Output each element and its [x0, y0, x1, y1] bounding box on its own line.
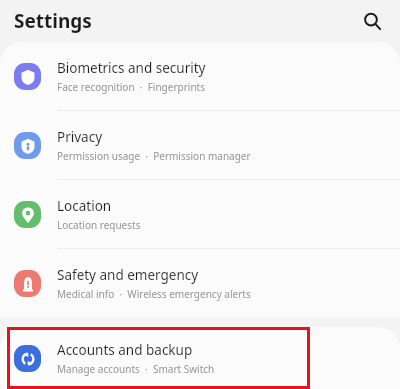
staticText: Settings	[14, 8, 92, 34]
staticText: Location requests	[57, 218, 141, 232]
staticText: Safety and emergency	[57, 266, 199, 284]
staticText: Biometrics and security	[57, 59, 206, 77]
button[interactable]: Safety and emergency	[0, 249, 400, 317]
staticText: Location	[57, 197, 112, 215]
staticText: Accounts and backup	[57, 341, 193, 359]
button[interactable]: Accounts and backup	[0, 327, 400, 389]
button[interactable]: Search	[357, 6, 387, 36]
staticText: Medical info · Wireless emergency alerts	[57, 287, 251, 301]
button[interactable]: Location	[0, 180, 400, 248]
button[interactable]: Biometrics and security	[0, 42, 400, 110]
staticText: Manage accounts · Smart Switch	[57, 362, 215, 376]
button[interactable]: Privacy	[0, 111, 400, 179]
staticText: Privacy	[57, 128, 103, 146]
staticText: Permission usage · Permission manager	[57, 149, 251, 163]
staticText: Face recognition · Fingerprints	[57, 80, 205, 94]
